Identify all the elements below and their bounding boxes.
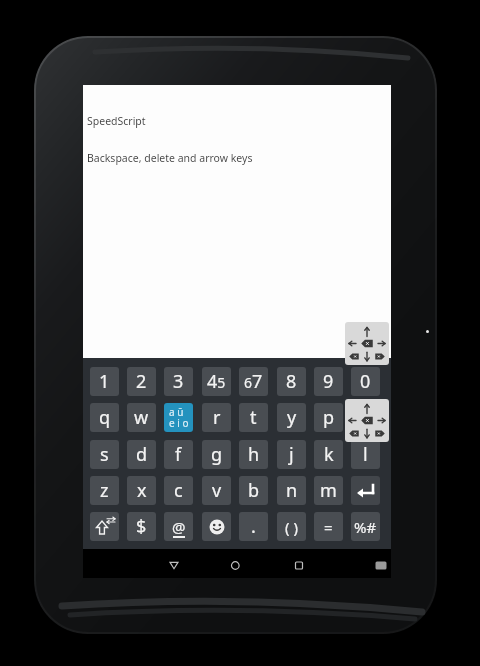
staticText: t <box>250 405 257 430</box>
staticText: k <box>324 442 334 467</box>
button[interactable]: d <box>127 440 156 469</box>
button[interactable] <box>90 512 119 541</box>
staticText: SpeedScript <box>87 114 146 128</box>
button[interactable]: 8 <box>277 367 306 396</box>
staticText: p <box>323 405 335 430</box>
button[interactable]: l <box>351 440 380 469</box>
button[interactable]: f <box>164 440 193 469</box>
button[interactable]: . <box>239 512 268 541</box>
button[interactable] <box>345 399 389 442</box>
staticText: a ŭ e i o <box>169 405 189 430</box>
button[interactable]: 9 <box>314 367 343 396</box>
staticText: 0 <box>360 369 371 394</box>
button[interactable]: 3 <box>164 367 193 396</box>
button[interactable]: g <box>202 440 231 469</box>
staticText: d <box>136 442 148 467</box>
button[interactable] <box>351 403 380 432</box>
staticText: y <box>287 405 297 430</box>
staticText: g <box>211 442 223 467</box>
button[interactable]: @ <box>164 512 193 541</box>
button[interactable]: z <box>90 476 119 505</box>
button[interactable]: v <box>202 476 231 505</box>
button[interactable]: c <box>164 476 193 505</box>
button[interactable]: $ <box>127 512 156 541</box>
button[interactable]: k <box>314 440 343 469</box>
button[interactable]: = <box>314 512 343 541</box>
button[interactable]: t <box>239 403 268 432</box>
staticText: z <box>100 478 109 503</box>
staticText: m <box>320 478 337 503</box>
button[interactable]: q <box>90 403 119 432</box>
staticText: @ <box>172 517 186 537</box>
staticText: b <box>248 478 260 503</box>
staticText: 2 <box>136 369 147 394</box>
staticText: 8 <box>286 369 297 394</box>
button[interactable]: a ŭ e i o <box>164 403 193 432</box>
staticText: q <box>99 405 111 430</box>
staticText: f <box>175 442 182 467</box>
button[interactable]: x <box>127 476 156 505</box>
button[interactable] <box>351 476 380 505</box>
staticText: 3 <box>173 369 184 394</box>
staticText: . <box>251 514 256 539</box>
staticText: 9 <box>323 369 334 394</box>
staticText: 1 <box>99 369 110 394</box>
staticText: w <box>134 405 149 430</box>
staticText: n <box>286 478 298 503</box>
button[interactable]: r <box>202 403 231 432</box>
button[interactable]: ( ) <box>277 512 306 541</box>
staticText: l <box>363 442 368 467</box>
staticText: 67 <box>244 369 263 394</box>
button[interactable]: s <box>90 440 119 469</box>
button[interactable]: j <box>277 440 306 469</box>
button[interactable]: w <box>127 403 156 432</box>
button[interactable] <box>202 512 231 541</box>
button[interactable]: m <box>314 476 343 505</box>
staticText: $ <box>136 514 147 539</box>
button[interactable]: 67 <box>239 367 268 396</box>
staticText: r <box>213 405 221 430</box>
button[interactable]: 45 <box>202 367 231 396</box>
button[interactable]: h <box>239 440 268 469</box>
staticText: 45 <box>207 369 226 394</box>
button[interactable] <box>345 322 389 365</box>
button[interactable]: b <box>239 476 268 505</box>
button[interactable]: p <box>314 403 343 432</box>
staticText: j <box>289 442 294 467</box>
button[interactable]: 1 <box>90 367 119 396</box>
staticText: c <box>174 478 183 503</box>
button[interactable]: 0 <box>351 367 380 396</box>
staticText: ( ) <box>285 517 298 537</box>
staticText: s <box>100 442 109 467</box>
button[interactable]: n <box>277 476 306 505</box>
staticText: %# <box>354 517 377 537</box>
staticText: = <box>324 517 333 537</box>
button[interactable]: 2 <box>127 367 156 396</box>
button[interactable]: y <box>277 403 306 432</box>
staticText: Backspace, delete and arrow keys <box>87 151 253 165</box>
staticText: h <box>248 442 260 467</box>
button[interactable]: %# <box>351 512 380 541</box>
staticText: v <box>212 478 222 503</box>
staticText: x <box>137 478 147 503</box>
